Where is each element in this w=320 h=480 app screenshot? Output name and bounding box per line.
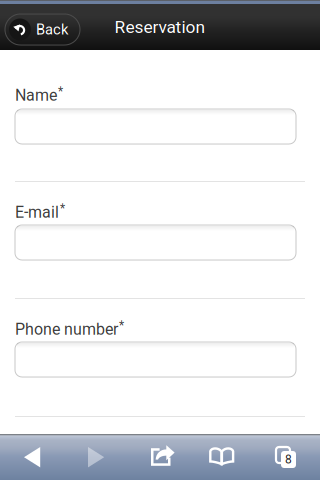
staticText: * [119, 318, 124, 332]
button[interactable]: Tabs [256, 434, 320, 480]
button[interactable]: Back [0, 434, 64, 480]
staticText: Phone number [15, 320, 118, 339]
staticText: Back [36, 21, 68, 38]
staticText: * [60, 201, 65, 215]
staticText: * [58, 84, 63, 98]
staticText: E-mail [15, 203, 59, 222]
button[interactable]: Share [131, 434, 195, 480]
staticText: Name [15, 86, 57, 105]
button[interactable]: Forward [64, 434, 128, 480]
button[interactable]: Bookmarks [192, 434, 256, 480]
staticText: Reservation [114, 17, 205, 37]
button[interactable]: Back [5, 14, 80, 45]
staticText: 8 [285, 452, 292, 467]
